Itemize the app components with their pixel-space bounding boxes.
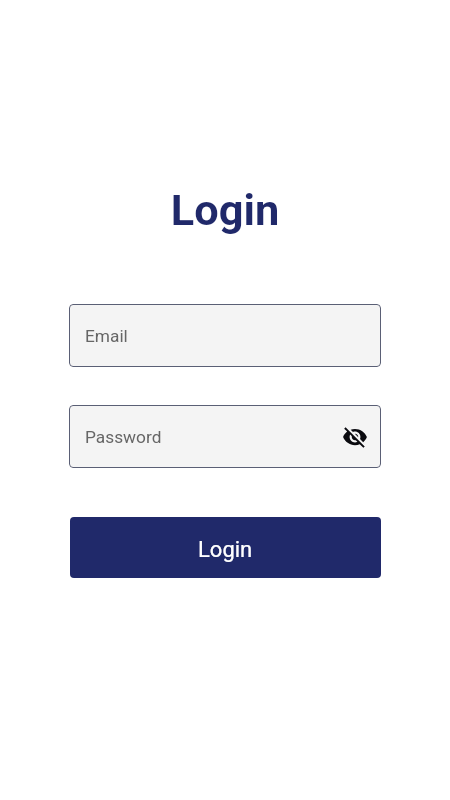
- staticText: Login: [198, 537, 253, 563]
- button[interactable]: Login: [70, 517, 381, 578]
- staticText: Login: [0, 185, 450, 236]
- button[interactable]: Show password: [339, 421, 371, 453]
- button[interactable]: Password: [69, 405, 381, 468]
- staticText: Password: [85, 427, 162, 447]
- staticText: Email: [85, 326, 128, 346]
- button[interactable]: Email: [69, 304, 381, 367]
